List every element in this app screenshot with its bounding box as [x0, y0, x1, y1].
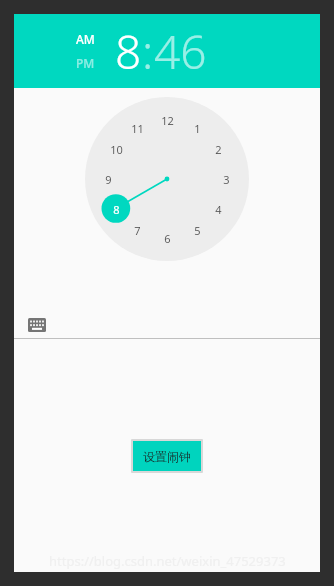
staticText: 5	[194, 223, 201, 238]
staticText: 46	[154, 20, 207, 83]
button[interactable]: 设置闹钟	[133, 441, 201, 471]
staticText: 8	[113, 202, 120, 217]
staticText: 4	[215, 202, 222, 217]
staticText: 11	[131, 121, 144, 136]
staticText: 1	[194, 121, 201, 136]
staticText: 8	[115, 20, 142, 83]
button[interactable]: 1	[85, 97, 249, 261]
staticText: :	[142, 20, 154, 83]
staticText: PM	[76, 55, 95, 71]
staticText: 9	[105, 172, 112, 187]
button[interactable]: AM	[74, 30, 97, 48]
staticText: https://blog.csdn.net/weixin_47529373	[49, 552, 286, 570]
staticText: 10	[110, 142, 123, 157]
staticText: AM	[76, 31, 95, 47]
staticText: 3	[223, 172, 230, 187]
staticText: 6	[164, 231, 171, 246]
button[interactable]: PM	[74, 54, 97, 72]
button[interactable]: 8	[115, 20, 142, 83]
staticText: 12	[161, 113, 174, 128]
staticText: 设置闹钟	[143, 449, 191, 464]
staticText: 7	[134, 223, 141, 238]
button[interactable]: 46	[154, 20, 207, 83]
button[interactable]: Switch to text input mode	[24, 314, 50, 336]
staticText: 2	[215, 142, 222, 157]
